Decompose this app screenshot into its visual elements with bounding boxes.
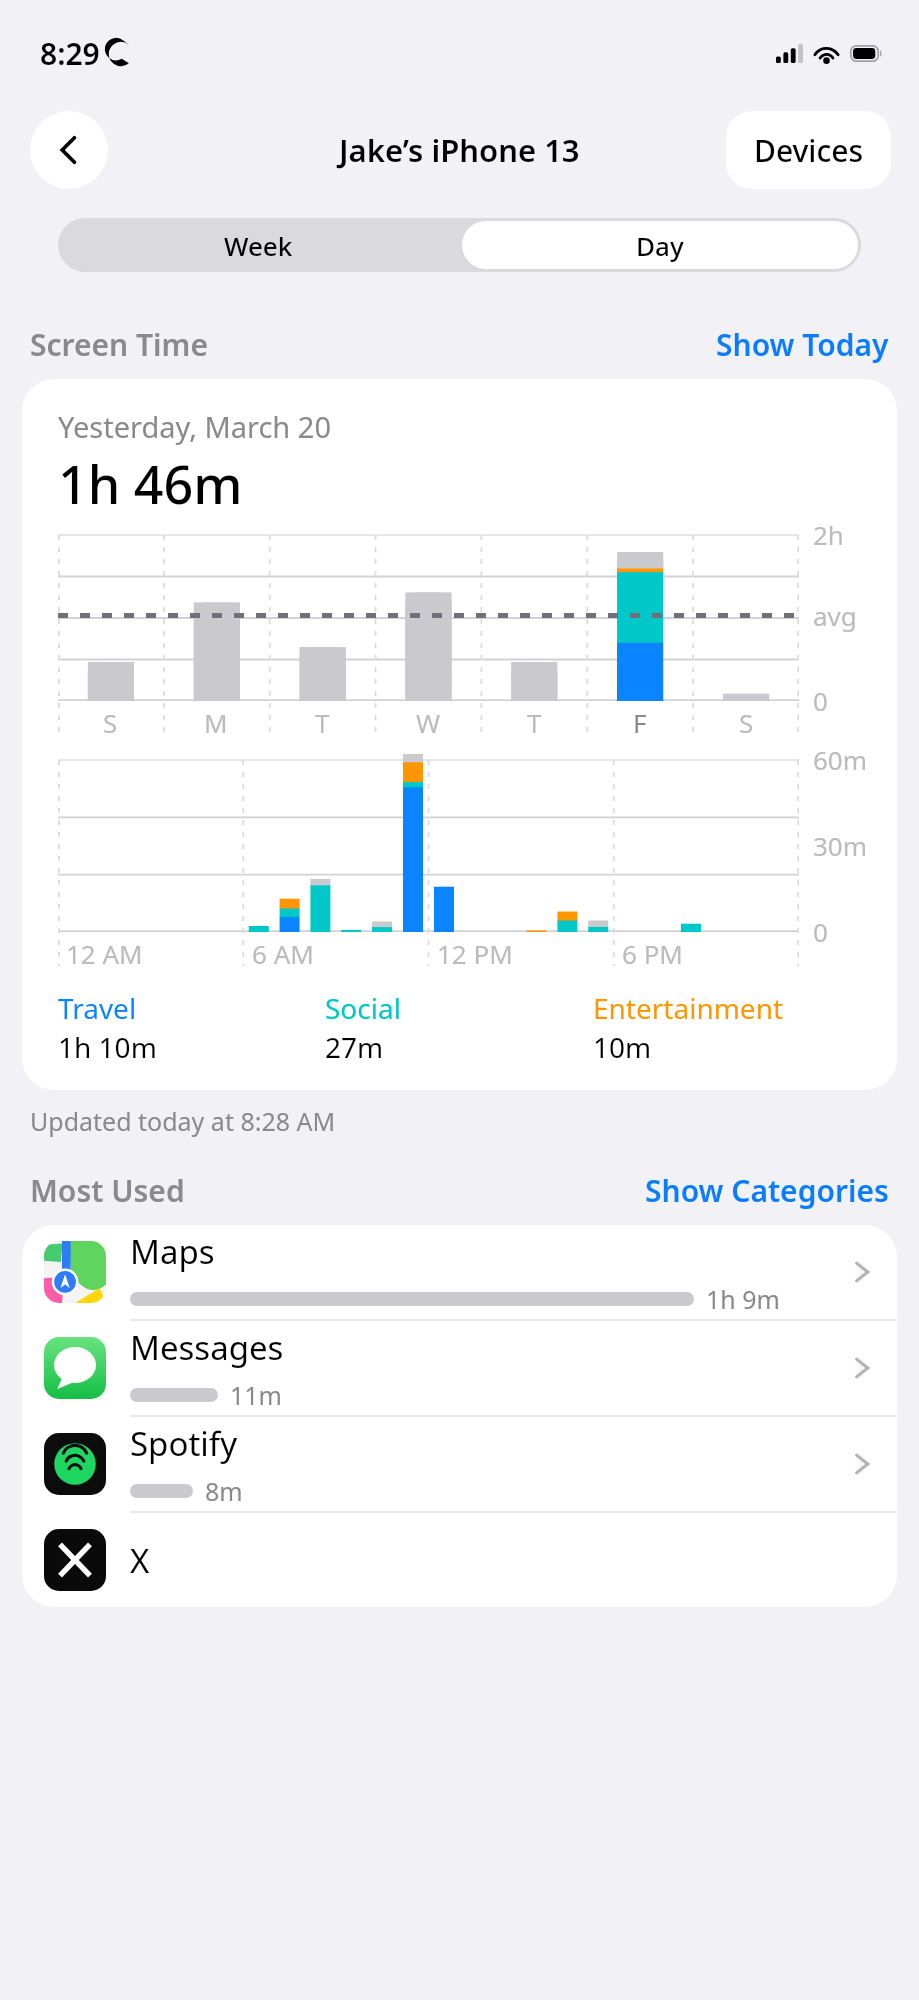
button[interactable]: Week xyxy=(58,218,459,272)
staticText: 0 xyxy=(813,914,828,949)
staticText: 1h 9m xyxy=(706,1282,780,1316)
staticText: 8:29 xyxy=(40,33,100,74)
staticText: 27m xyxy=(325,1028,384,1066)
staticText: 60m xyxy=(813,742,868,777)
button[interactable]: Show Today xyxy=(716,324,889,365)
button[interactable]: X xyxy=(22,1513,897,1607)
button[interactable]: Messages xyxy=(22,1321,897,1417)
button[interactable]: Yesterday, March 20 xyxy=(22,379,897,1090)
staticText: Spotify xyxy=(130,1421,237,1466)
button[interactable]: Day xyxy=(462,221,858,269)
staticText: Devices xyxy=(754,130,863,171)
staticText: 2h xyxy=(813,517,844,552)
button[interactable]: Back xyxy=(30,111,108,189)
staticText: 1h 10m xyxy=(58,1028,157,1066)
staticText: W xyxy=(416,705,441,740)
staticText: F xyxy=(633,705,647,740)
button[interactable]: Devices xyxy=(726,111,891,189)
staticText: 10m xyxy=(593,1028,652,1066)
button[interactable]: Maps xyxy=(22,1225,897,1321)
staticText: 0 xyxy=(813,683,828,718)
staticText: avg xyxy=(813,598,857,633)
staticText: Messages xyxy=(130,1325,284,1370)
staticText: 11m xyxy=(230,1378,282,1412)
staticText: 6 PM xyxy=(622,936,683,971)
staticText: Travel xyxy=(58,989,137,1027)
staticText: S xyxy=(739,705,754,740)
staticText: 30m xyxy=(813,828,868,863)
staticText: 12 PM xyxy=(437,936,513,971)
button[interactable]: Spotify xyxy=(22,1417,897,1513)
staticText: Yesterday, March 20 xyxy=(58,407,332,446)
staticText: T xyxy=(315,705,330,740)
staticText: Screen Time xyxy=(30,324,208,365)
staticText: Most Used xyxy=(30,1170,185,1211)
staticText: S xyxy=(103,705,118,740)
staticText: 1h 46m xyxy=(58,448,243,519)
staticText: Entertainment xyxy=(593,989,784,1027)
staticText: Week xyxy=(224,228,293,263)
staticText: Maps xyxy=(130,1229,215,1274)
staticText: 6 AM xyxy=(252,936,314,971)
staticText: Updated today at 8:28 AM xyxy=(30,1104,336,1138)
staticText: Show Today xyxy=(716,324,889,365)
staticText: Day xyxy=(636,228,684,263)
staticText: X xyxy=(130,1538,150,1583)
staticText: 12 AM xyxy=(66,936,143,971)
staticText: Social xyxy=(325,989,401,1027)
staticText: Jake’s iPhone 13 xyxy=(339,129,580,171)
button[interactable]: Show Categories xyxy=(645,1170,889,1211)
staticText: 8m xyxy=(205,1474,243,1508)
staticText: T xyxy=(527,705,542,740)
staticText: Show Categories xyxy=(645,1170,889,1211)
staticText: M xyxy=(204,705,228,740)
